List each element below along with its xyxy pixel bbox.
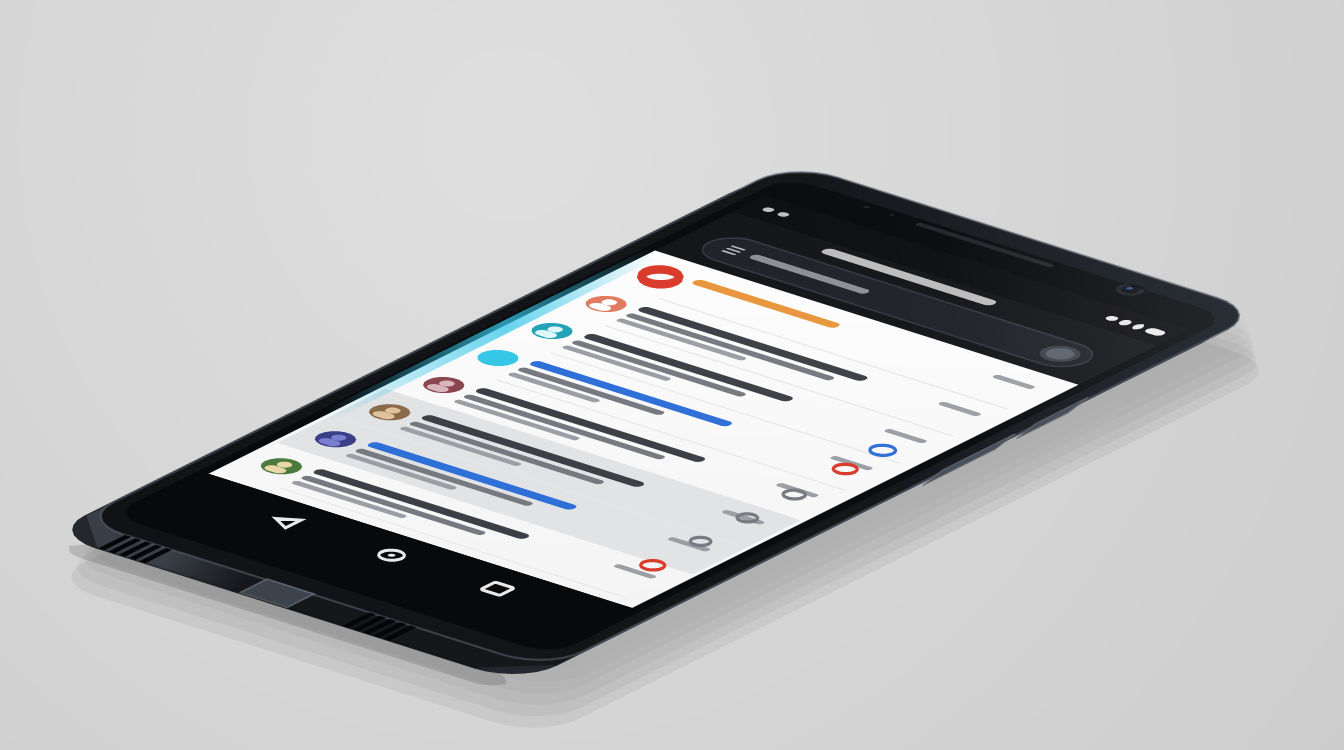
button[interactable]: Inbox list	[0, 0, 1344, 750]
button[interactable]: Android phone showing an inbox app	[0, 0, 1344, 750]
